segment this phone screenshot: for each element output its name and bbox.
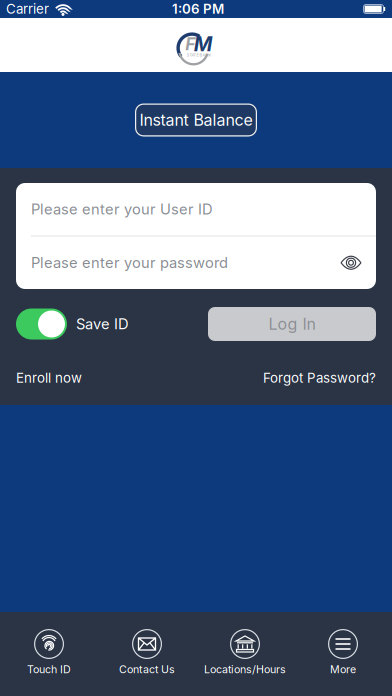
staticText: M: [194, 32, 213, 56]
staticText: Touch ID: [27, 663, 71, 676]
button[interactable]: Enroll now: [16, 370, 82, 386]
button[interactable]: Instant Balance: [135, 103, 257, 136]
staticText: Enroll now: [16, 370, 82, 386]
staticText: F: [185, 34, 195, 54]
staticText: STATE BANK: [186, 53, 211, 57]
button[interactable]: Show password: [341, 256, 361, 269]
staticText: Please enter your User ID: [31, 201, 213, 218]
button[interactable]: Locations/Hours: [196, 629, 294, 676]
staticText: Forgot Password?: [263, 370, 376, 386]
staticText: More: [330, 663, 356, 676]
staticText: Carrier: [6, 1, 49, 17]
staticText: Please enter your password: [31, 254, 228, 271]
staticText: 1:06 PM: [172, 1, 224, 17]
staticText: Save ID: [76, 315, 129, 333]
staticText: Contact Us: [119, 663, 175, 676]
button[interactable]: Touch ID: [0, 629, 98, 676]
button[interactable]: Save ID: [16, 308, 67, 339]
staticText: Log In: [268, 315, 315, 333]
button[interactable]: Forgot Password?: [263, 370, 376, 386]
staticText: Instant Balance: [139, 111, 252, 129]
button[interactable]: Contact Us: [98, 629, 196, 676]
staticText: Locations/Hours: [204, 663, 286, 676]
button[interactable]: More: [294, 629, 392, 676]
button[interactable]: Log In: [208, 307, 376, 341]
